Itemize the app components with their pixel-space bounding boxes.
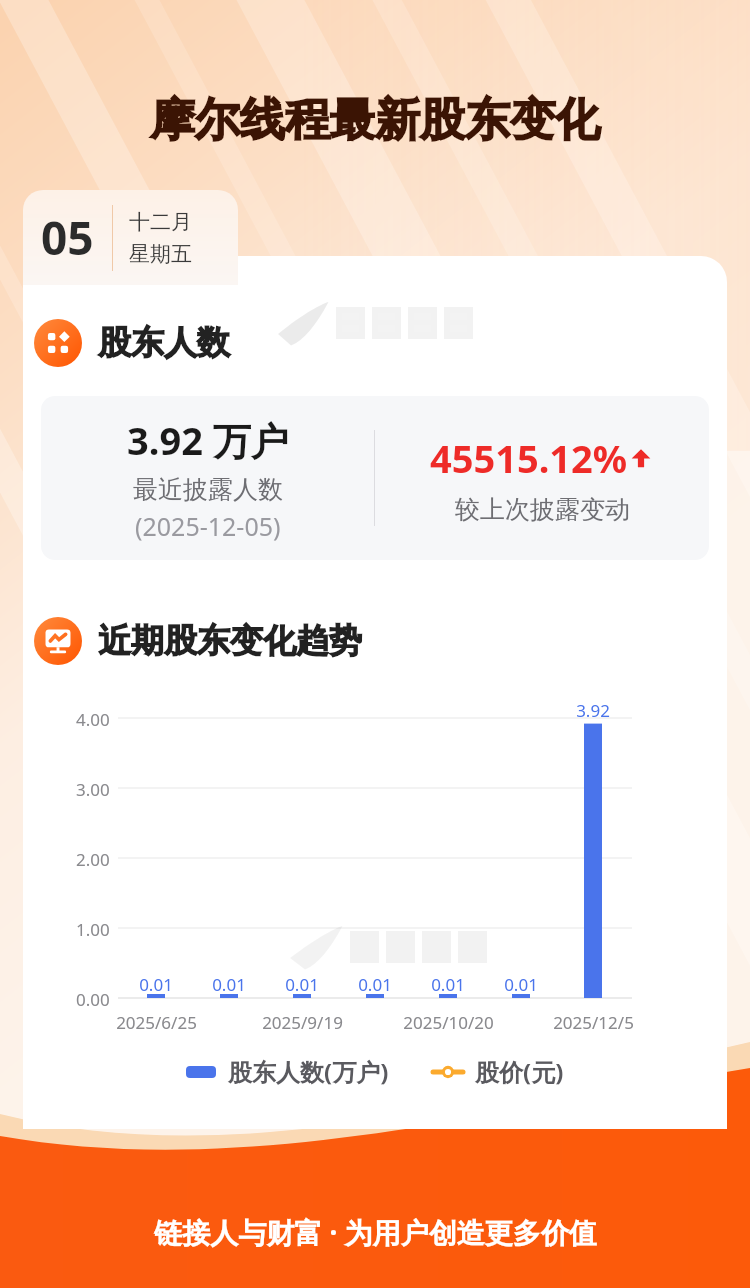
staticText: 2025/6/25	[116, 1011, 197, 1034]
staticText: 近期股东变化趋势	[98, 620, 362, 662]
staticText: 0.00	[76, 988, 110, 1011]
staticText: 0.01	[431, 973, 465, 996]
staticText: 0.01	[504, 973, 538, 996]
staticText: 2025/12/5	[553, 1011, 634, 1034]
staticText: 45515.12%	[430, 432, 628, 484]
staticText: 星期五	[129, 241, 192, 267]
staticText: 0.01	[212, 973, 246, 996]
button[interactable]: 近期股东变化趋势	[34, 616, 362, 666]
staticText: 0.01	[285, 973, 319, 996]
button[interactable]: 股东人数(万户)	[186, 1055, 389, 1088]
staticText: 股东人数	[98, 322, 230, 364]
staticText: 4.00	[76, 708, 110, 731]
staticText: 最近披露人数	[133, 474, 283, 505]
staticText: 股价(元)	[475, 1055, 564, 1088]
button[interactable]: 3.92 万户	[41, 396, 709, 560]
other: 近期股东变化趋势	[34, 617, 82, 665]
staticText: 05	[41, 206, 94, 269]
staticText: 2025/9/19	[262, 1011, 343, 1034]
button[interactable]: 股价(元)	[433, 1055, 564, 1088]
staticText: 十二月	[129, 209, 192, 235]
staticText: 3.92	[576, 699, 610, 722]
staticText: 较上次披露变动	[455, 494, 630, 525]
staticText: 摩尔线程最新股东变化	[150, 92, 600, 149]
staticText: 2.00	[76, 848, 110, 871]
staticText: 0.01	[358, 973, 392, 996]
staticText: 3.92 万户	[127, 414, 289, 466]
other: 股东人数	[34, 319, 82, 367]
staticText: 股东人数(万户)	[228, 1055, 389, 1088]
staticText: 链接人与财富 · 为用户创造更多价值	[154, 1213, 597, 1251]
staticText: 3.00	[76, 778, 110, 801]
staticText: 0.01	[139, 973, 173, 996]
button[interactable]: 股东人数	[34, 318, 230, 368]
staticText: 2025/10/20	[403, 1011, 494, 1034]
staticText: 1.00	[76, 918, 110, 941]
staticText: (2025-12-05)	[135, 509, 281, 543]
